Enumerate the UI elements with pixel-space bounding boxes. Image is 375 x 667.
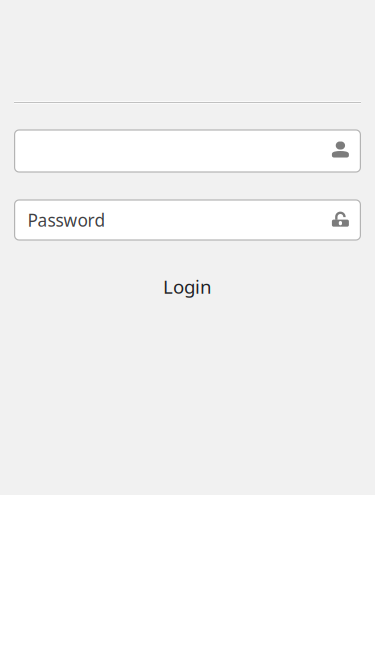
button[interactable]: Password [15,200,360,240]
button[interactable]: Login [145,268,230,305]
staticText: Password [28,208,106,231]
staticText: Login [163,274,212,299]
button[interactable]: Username [15,130,360,172]
